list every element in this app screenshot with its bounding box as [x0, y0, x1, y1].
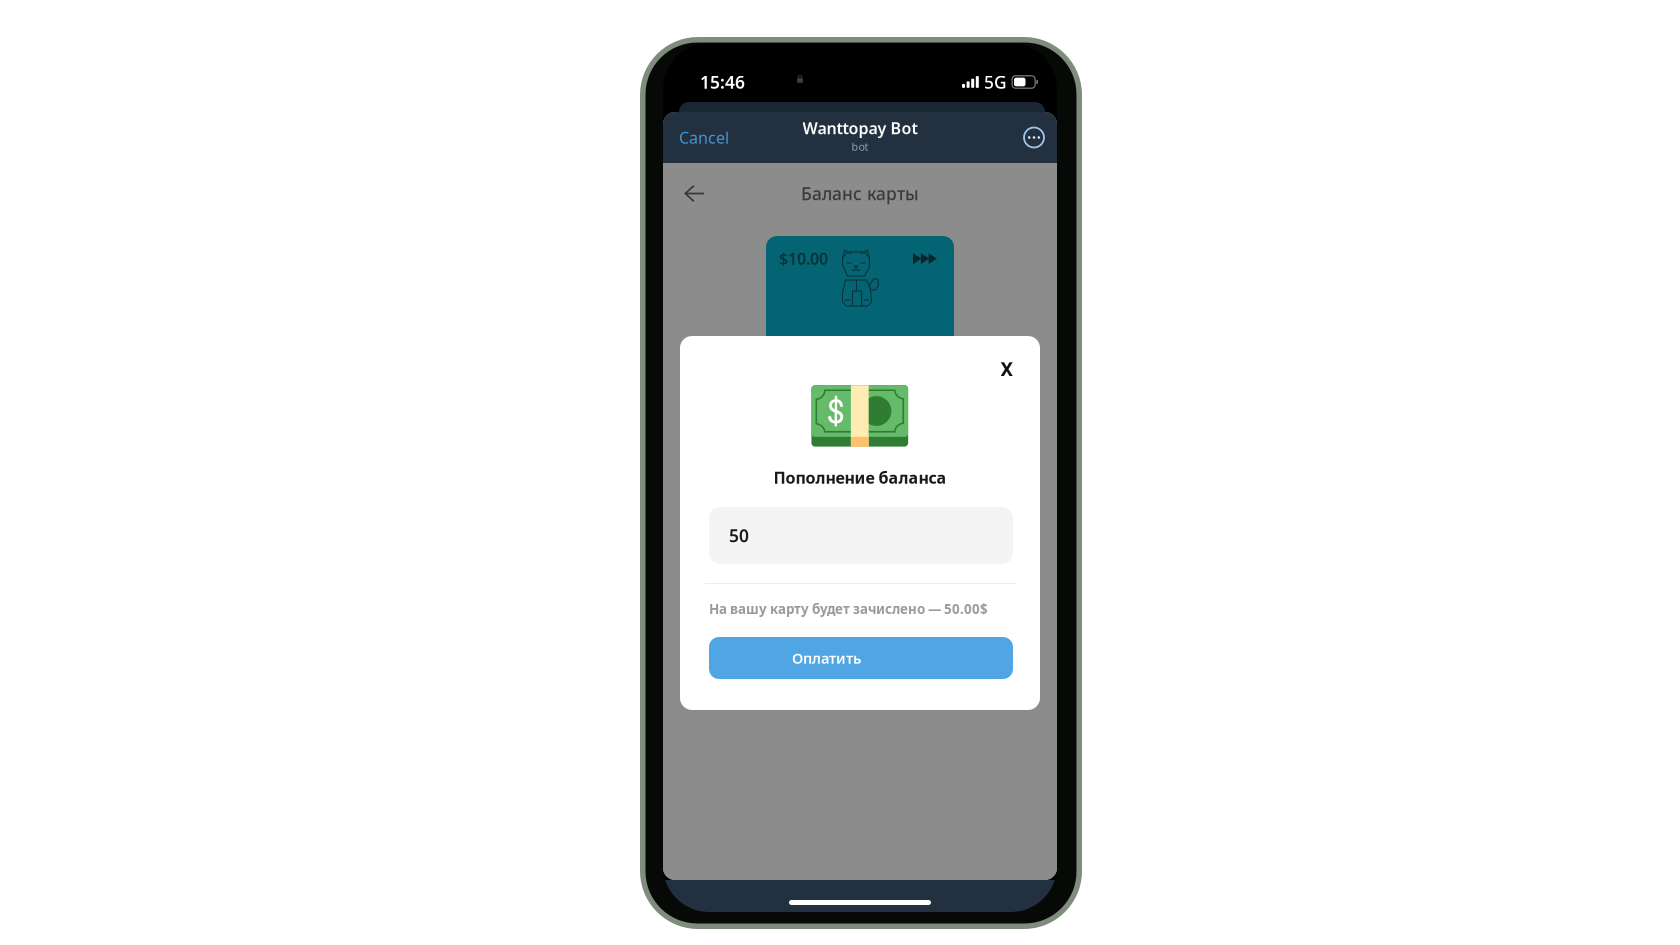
staticText: 5G	[984, 70, 1007, 93]
staticText: X	[1000, 357, 1013, 381]
button[interactable]: Close	[990, 354, 1024, 384]
staticText: На вашу карту будет зачислено — 50.00$	[709, 600, 988, 618]
staticText: $10.00	[779, 248, 828, 269]
staticText: Wanttopay Bot	[802, 117, 917, 138]
button[interactable]: Cancel	[663, 112, 741, 163]
staticText: Пополнение баланса	[773, 467, 946, 488]
button[interactable]: More options	[1023, 112, 1057, 163]
staticText: 💵	[805, 366, 915, 466]
staticText: Cancel	[679, 127, 729, 148]
button[interactable]: $10.00	[766, 236, 954, 356]
staticText: 15:46	[700, 70, 745, 93]
button[interactable]: Back	[663, 163, 718, 224]
staticText: Оплатить	[792, 648, 861, 668]
button[interactable]: Оплатить	[709, 637, 1013, 679]
staticText: bot	[851, 139, 868, 154]
staticText: 50	[729, 524, 749, 547]
staticText: Баланс карты	[801, 182, 919, 205]
